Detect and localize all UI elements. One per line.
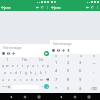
button[interactable]: Attach file — [11, 51, 16, 56]
staticText: 5 — [67, 68, 70, 73]
button[interactable]: 0 — [62, 84, 74, 93]
button[interactable]: Emoji — [51, 48, 56, 53]
button[interactable]: r — [15, 62, 20, 69]
button[interactable]: The — [16, 57, 33, 62]
button[interactable] — [50, 54, 62, 58]
button[interactable]: l — [43, 69, 48, 76]
button[interactable]: i — [35, 62, 40, 69]
button[interactable]: I — [0, 57, 16, 62]
button[interactable]: Call — [40, 4, 45, 11]
staticText: 8 — [67, 77, 70, 82]
button[interactable]: Navigate up — [50, 4, 54, 11]
button[interactable]: 5 — [62, 66, 74, 75]
staticText: i — [37, 64, 38, 68]
staticText: b — [31, 78, 33, 82]
button[interactable]: Home — [22, 94, 28, 100]
button[interactable] — [74, 54, 87, 58]
button[interactable]: y — [25, 62, 30, 69]
button[interactable]: Camera — [6, 51, 11, 56]
button[interactable]: g — [23, 69, 28, 76]
button[interactable]: 4 — [50, 66, 62, 75]
button[interactable]: k — [38, 69, 43, 76]
button[interactable]: Recent apps — [36, 94, 42, 100]
staticText: I'm — [39, 58, 44, 62]
button[interactable]: m — [39, 76, 44, 83]
button[interactable]: z — [6, 76, 12, 83]
button[interactable]: t — [20, 62, 25, 69]
button[interactable]: e — [10, 62, 15, 69]
button[interactable]: More options — [45, 4, 50, 11]
button[interactable]: s — [8, 69, 13, 76]
button[interactable]: p — [45, 62, 50, 69]
button[interactable]: More options — [95, 4, 100, 11]
button[interactable]: * — [50, 84, 62, 93]
staticText: . — [93, 77, 95, 82]
staticText: I — [7, 58, 9, 62]
button[interactable]: c — [18, 76, 24, 83]
button[interactable]: v — [24, 76, 29, 83]
button[interactable] — [62, 54, 74, 58]
button[interactable]: — — [87, 58, 100, 66]
staticText: 9 — [79, 77, 82, 82]
button[interactable]: 8 — [62, 75, 74, 84]
button[interactable]: d — [13, 69, 18, 76]
button[interactable]: u — [30, 62, 35, 69]
button[interactable]: x — [12, 76, 18, 83]
button[interactable]: n — [34, 76, 39, 83]
button[interactable]: Back — [8, 94, 14, 100]
button[interactable]: 7 — [50, 75, 62, 84]
staticText: c — [20, 78, 22, 82]
button[interactable]: Emoji — [1, 51, 6, 56]
button[interactable]: Home — [72, 94, 78, 100]
button[interactable]: ⌫ — [87, 84, 100, 93]
button[interactable]: h — [28, 69, 33, 76]
staticText: l — [45, 71, 46, 75]
button[interactable]: 3 — [74, 58, 87, 66]
staticText: t — [22, 64, 24, 68]
staticText: r — [17, 64, 19, 68]
button[interactable]: Emoji — [7, 83, 11, 90]
button[interactable]: # — [74, 84, 87, 93]
staticText: e — [12, 64, 14, 68]
staticText: o — [42, 64, 44, 68]
button[interactable]: a — [2, 69, 8, 76]
staticText: — — [92, 60, 96, 65]
staticText: 0 — [67, 86, 70, 91]
button[interactable]: Back — [58, 94, 64, 100]
button[interactable]: Video call — [85, 4, 90, 11]
staticText: n — [36, 78, 38, 82]
button[interactable]: 1 — [50, 58, 62, 66]
button[interactable]: 6 — [74, 66, 87, 75]
button[interactable]: w — [5, 62, 10, 69]
button[interactable]: Shift — [0, 76, 6, 83]
button[interactable]: Backspace — [44, 76, 50, 83]
button[interactable]: Enter — [44, 84, 49, 89]
button[interactable]: I'm — [33, 57, 50, 62]
staticText: Jane — [54, 6, 61, 10]
button[interactable]: 2 — [62, 58, 74, 66]
button[interactable]: Navigate up — [0, 4, 4, 11]
button[interactable]: Call — [90, 4, 95, 11]
button[interactable]: Video call — [35, 4, 40, 11]
button[interactable]: , — [87, 66, 100, 75]
staticText: x — [14, 78, 16, 82]
button[interactable]: b — [29, 76, 34, 83]
button[interactable]: Period — [40, 83, 44, 90]
button[interactable]: f — [18, 69, 23, 76]
staticText: 7 — [55, 77, 58, 82]
button[interactable]: q — [0, 62, 5, 69]
staticText: w — [6, 64, 9, 68]
button[interactable]: Send — [44, 51, 49, 56]
button[interactable]: Camera — [56, 48, 61, 53]
button[interactable]: Attach file — [61, 48, 66, 53]
button[interactable]: 9 — [74, 75, 87, 84]
button[interactable]: ?123 — [1, 83, 7, 90]
button[interactable]: Recent apps — [86, 94, 92, 100]
button[interactable] — [87, 54, 100, 58]
staticText: Text message — [3, 46, 22, 50]
button[interactable]: Microphone — [66, 48, 71, 53]
button[interactable]: j — [33, 69, 38, 76]
button[interactable]: o — [40, 62, 45, 69]
